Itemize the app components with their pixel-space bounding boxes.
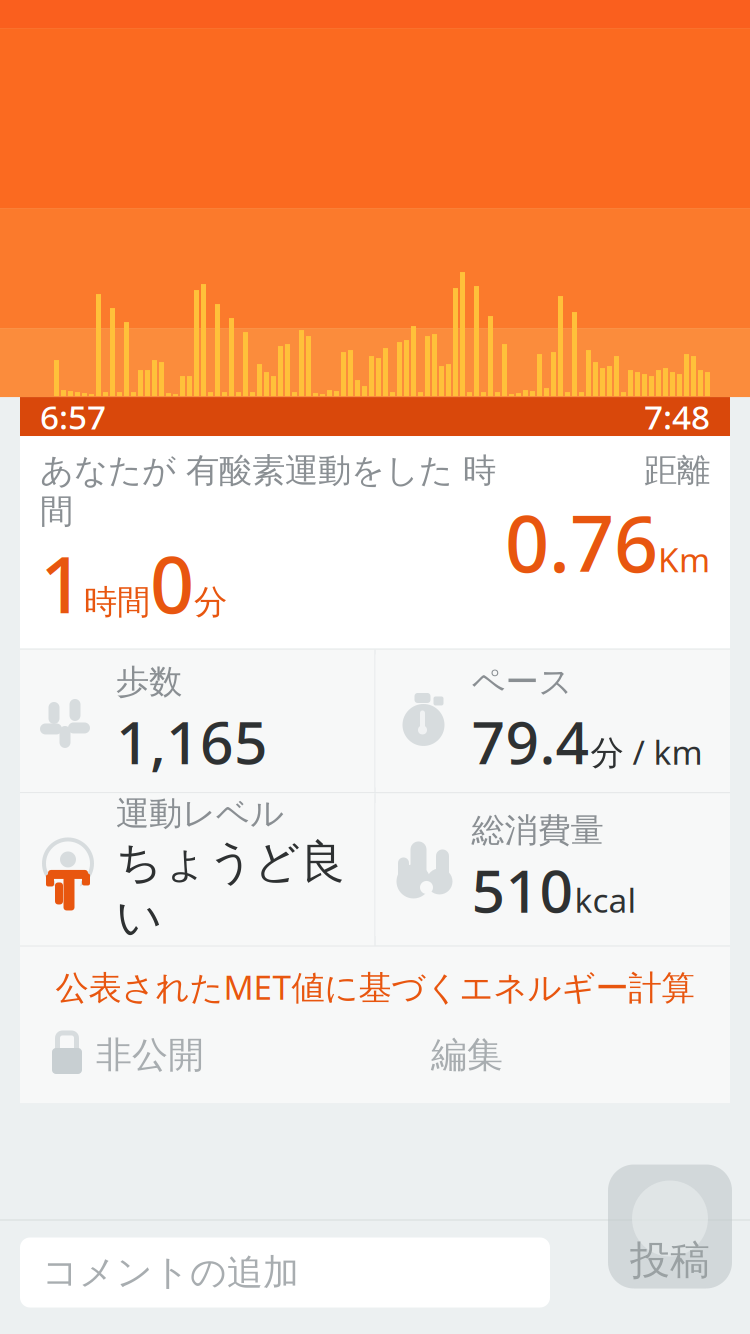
staticText: 時間 bbox=[84, 582, 150, 623]
button[interactable]: 公表されたMET値に基づくエネルギー計算 bbox=[20, 947, 730, 1027]
button[interactable]: 歩数 bbox=[20, 654, 374, 787]
button[interactable]: 運動レベル bbox=[20, 793, 374, 946]
staticText: 投稿 bbox=[630, 1236, 710, 1285]
staticText: 非公開 bbox=[96, 1033, 204, 1077]
staticText: 7:48 bbox=[644, 394, 710, 439]
staticText: 1 bbox=[40, 532, 84, 635]
staticText: 0.76 bbox=[505, 491, 658, 594]
button[interactable]: コメントの追加 bbox=[20, 1237, 550, 1307]
staticText: 距離 bbox=[644, 450, 710, 491]
staticText: kcal bbox=[574, 878, 636, 922]
staticText: あなたが 有酸素運動をした 時間 bbox=[40, 450, 496, 532]
staticText: コメントの追加 bbox=[42, 1250, 299, 1295]
button[interactable]: 非公開 bbox=[20, 1027, 204, 1083]
staticText: 公表されたMET値に基づくエネルギー計算 bbox=[55, 965, 694, 1009]
staticText: 1,165 bbox=[116, 702, 268, 780]
staticText: 編集 bbox=[431, 1033, 503, 1077]
staticText: Km bbox=[658, 537, 710, 582]
button[interactable]: ペース bbox=[375, 654, 730, 787]
button[interactable]: 編集 bbox=[431, 1027, 503, 1083]
staticText: 歩数 bbox=[116, 661, 182, 702]
staticText: 総消費量 bbox=[471, 810, 603, 851]
staticText: 79.4 bbox=[471, 702, 589, 780]
button[interactable]: 投稿 bbox=[608, 1164, 732, 1288]
staticText: 分 bbox=[194, 582, 227, 623]
staticText: 510 bbox=[471, 851, 573, 929]
button[interactable]: 総消費量 bbox=[375, 803, 730, 936]
staticText: 運動レベル bbox=[116, 793, 284, 834]
staticText: ペース bbox=[471, 661, 572, 702]
staticText: 分 / km bbox=[590, 730, 702, 774]
staticText: 6:57 bbox=[40, 394, 106, 439]
staticText: 0 bbox=[150, 532, 194, 635]
staticText: ちょうど良い bbox=[116, 834, 345, 946]
